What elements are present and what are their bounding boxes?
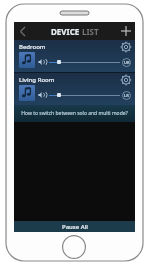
staticText: LIST (82, 26, 99, 37)
button[interactable]: Channel UR (122, 58, 131, 67)
staticText: Bedroom (19, 43, 46, 51)
button[interactable]: Back (14, 22, 30, 40)
staticText: Living Room (19, 76, 55, 84)
button[interactable]: Volume slider (49, 90, 120, 100)
button[interactable]: Bedroom (14, 40, 135, 72)
button[interactable]: Channel LR (122, 91, 131, 100)
button[interactable]: Pause All (14, 221, 135, 232)
staticText: DEVICE (51, 26, 80, 37)
button[interactable]: Now playing (19, 85, 35, 101)
button[interactable]: Mute (38, 58, 46, 66)
button[interactable]: Settings for Bedroom (121, 42, 131, 52)
button[interactable]: Living Room (14, 73, 135, 105)
button[interactable]: Now playing (19, 52, 35, 68)
staticText: LR (124, 93, 129, 98)
staticText: How to switch between solo and multi mod… (21, 110, 128, 117)
button[interactable]: Volume slider (49, 57, 120, 67)
button[interactable]: Add device (117, 22, 135, 40)
staticText: UR (124, 60, 130, 65)
button[interactable]: Mute (38, 91, 46, 99)
button[interactable]: How to switch between solo and multi mod… (14, 105, 135, 122)
staticText: Pause All (62, 223, 88, 231)
button[interactable]: Settings for Living Room (121, 75, 131, 85)
